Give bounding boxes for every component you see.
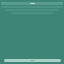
staticText: OK [31, 59, 34, 62]
staticText: Title [30, 2, 35, 5]
button[interactable]: Title [1, 2, 63, 5]
button[interactable]: Confirm [4, 59, 61, 62]
